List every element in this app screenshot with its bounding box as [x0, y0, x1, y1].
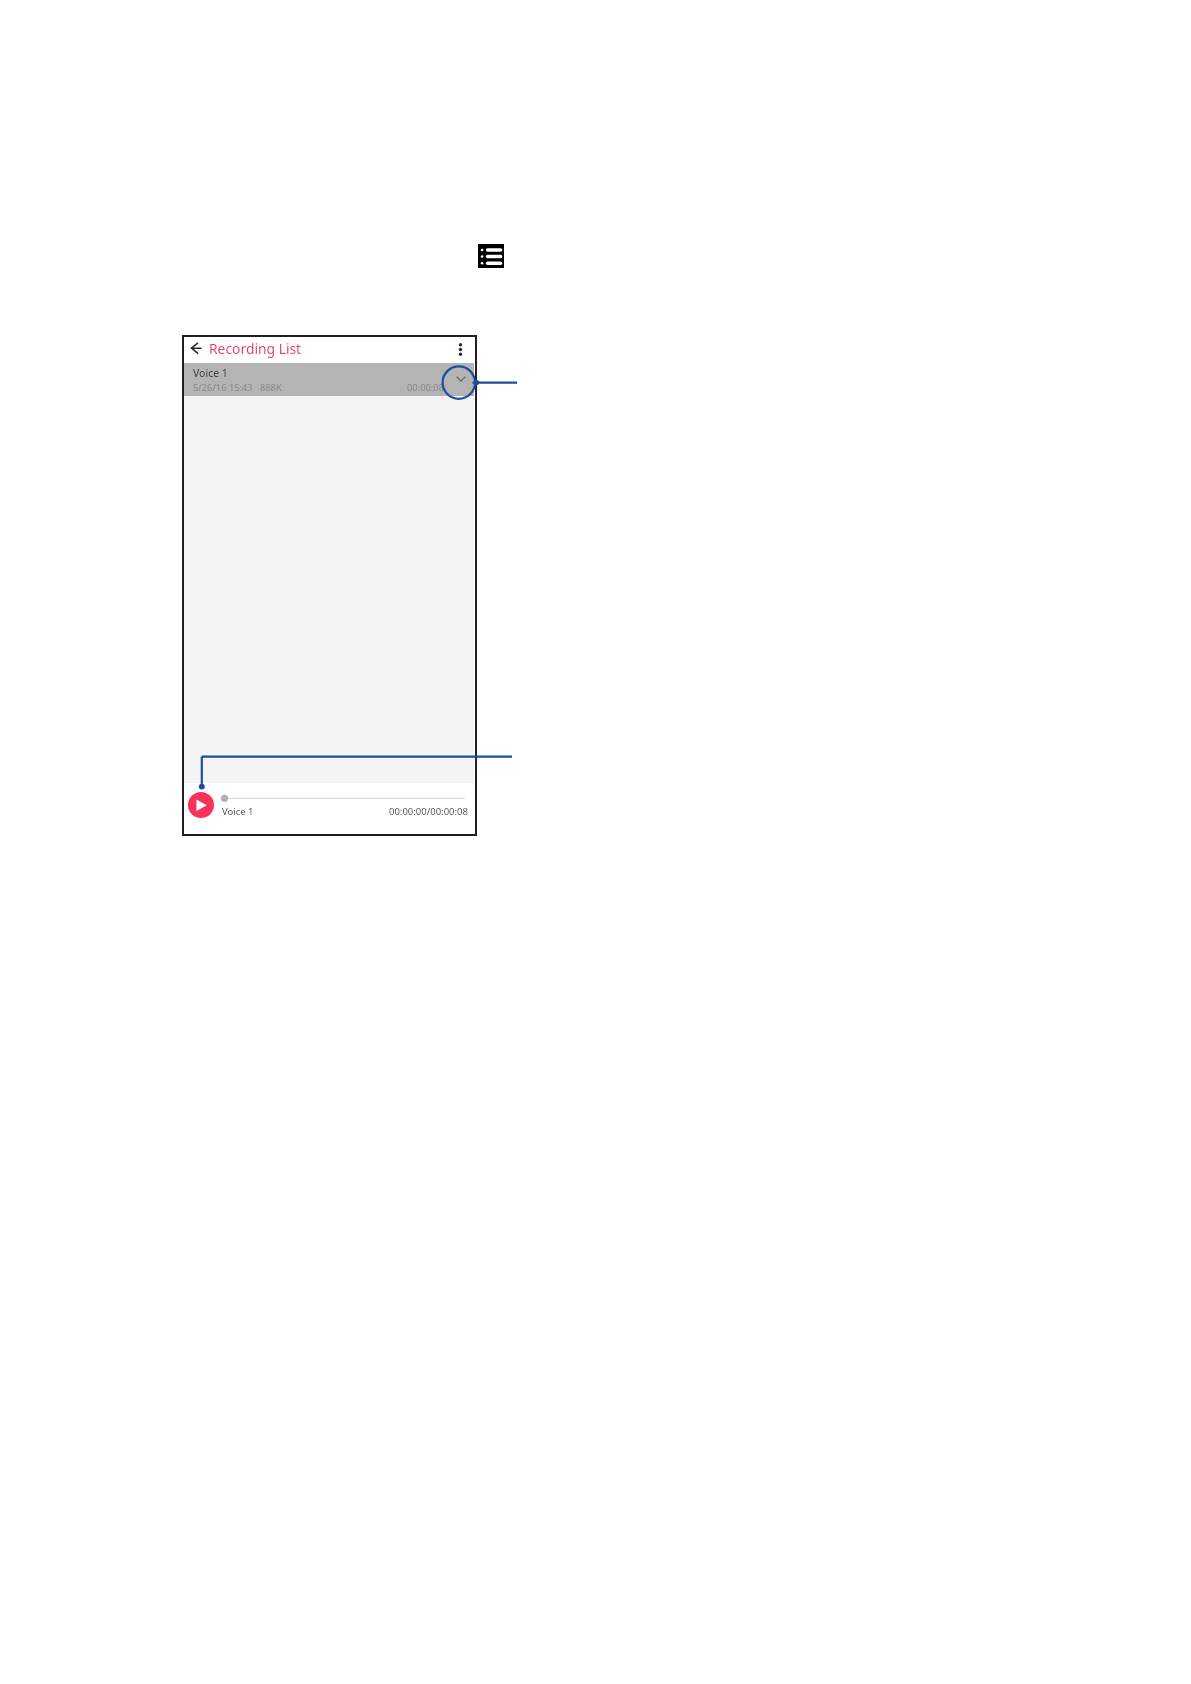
button[interactable]: List view [478, 244, 504, 268]
staticText: 00:00:00/00:00:08 [389, 805, 468, 818]
staticText: Recording List [209, 339, 302, 358]
staticText: Voice 1 [193, 366, 228, 380]
button[interactable]: Play [188, 792, 214, 818]
button[interactable]: More options [450, 339, 470, 359]
button[interactable]: Back [183, 335, 202, 354]
staticText: 5/26/16 15:43 888K [193, 381, 282, 394]
staticText: 00:00:08 [407, 381, 444, 394]
staticText: Voice 1 [222, 805, 254, 818]
button[interactable]: Voice 1 [182, 363, 474, 396]
button[interactable]: Expand [451, 369, 471, 389]
